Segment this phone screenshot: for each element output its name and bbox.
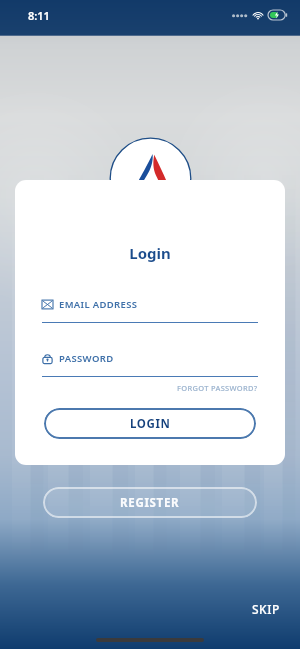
other: Email — [42, 299, 53, 310]
button[interactable]: REGISTER — [43, 487, 257, 518]
staticText: LOGIN — [130, 416, 171, 432]
staticText: PASSWORD — [59, 352, 114, 365]
staticText: 8:11 — [28, 8, 50, 23]
button[interactable]: FORGOT PASSWORD? — [15, 383, 258, 393]
staticText: SKIP — [252, 601, 280, 617]
staticText: REGISTER — [120, 495, 180, 511]
button[interactable]: LOGIN — [44, 408, 256, 439]
other: Password — [42, 353, 53, 364]
button[interactable]: Email — [42, 298, 258, 323]
staticText: FORGOT PASSWORD? — [177, 383, 258, 393]
button[interactable]: Password — [42, 352, 258, 377]
staticText: EMAIL ADDRESS — [59, 298, 138, 311]
staticText: Login — [15, 243, 285, 263]
button[interactable]: SKIP — [246, 597, 286, 621]
